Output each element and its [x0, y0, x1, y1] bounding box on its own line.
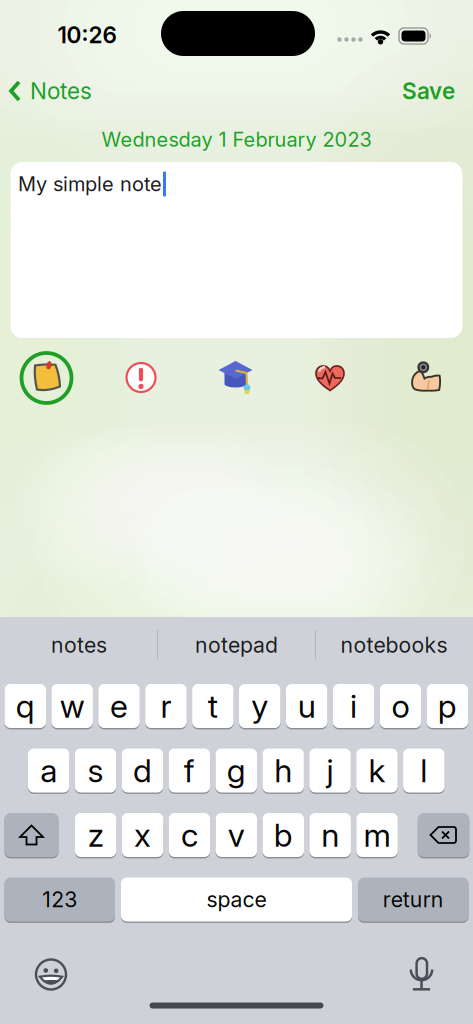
- button[interactable]: Save: [355, 74, 455, 108]
- button[interactable]: w: [51, 683, 93, 729]
- button[interactable]: r: [145, 683, 187, 729]
- button[interactable]: x: [122, 812, 163, 858]
- staticText: Notes: [30, 78, 92, 104]
- button[interactable]: q: [4, 683, 46, 729]
- button[interactable]: space: [121, 876, 352, 922]
- button[interactable]: [406, 953, 436, 993]
- button[interactable]: o: [380, 683, 421, 729]
- staticText: 123: [42, 887, 77, 912]
- button[interactable]: g: [215, 747, 257, 793]
- staticText: s: [87, 752, 103, 789]
- button[interactable]: return: [358, 876, 468, 922]
- staticText: notepad: [195, 632, 278, 658]
- staticText: u: [298, 687, 316, 725]
- staticText: notes: [51, 632, 107, 658]
- staticText: d: [133, 752, 152, 789]
- staticText: b: [274, 816, 293, 854]
- staticText: i: [350, 687, 357, 725]
- button[interactable]: y: [239, 683, 280, 729]
- staticText: 10:26: [57, 22, 116, 48]
- staticText: Wednesday 1 February 2023: [101, 128, 371, 151]
- button[interactable]: notes: [4, 623, 154, 667]
- button[interactable]: My simple note: [10, 162, 462, 338]
- button[interactable]: notepad: [161, 623, 311, 667]
- staticText: q: [16, 687, 35, 725]
- button[interactable]: [418, 812, 469, 858]
- staticText: space: [206, 887, 266, 912]
- button[interactable]: s: [75, 747, 116, 793]
- staticText: r: [160, 687, 171, 725]
- button[interactable]: [123, 359, 159, 395]
- button[interactable]: n: [309, 812, 351, 858]
- staticText: notebooks: [340, 632, 447, 658]
- staticText: v: [228, 816, 245, 854]
- staticText: x: [134, 816, 151, 854]
- button[interactable]: h: [262, 747, 304, 793]
- button[interactable]: j: [309, 747, 351, 793]
- button[interactable]: c: [169, 812, 210, 858]
- staticText: o: [391, 687, 409, 725]
- staticText: g: [227, 752, 246, 789]
- button[interactable]: p: [427, 683, 468, 729]
- staticText: l: [420, 752, 427, 789]
- staticText: n: [321, 816, 339, 854]
- staticText: m: [363, 816, 390, 854]
- button[interactable]: i: [333, 683, 374, 729]
- staticText: Save: [402, 78, 455, 104]
- button[interactable]: k: [356, 747, 398, 793]
- staticText: k: [368, 752, 385, 789]
- button[interactable]: [4, 812, 58, 858]
- button[interactable]: m: [356, 812, 398, 858]
- button[interactable]: Notes: [9, 74, 129, 108]
- button[interactable]: [17, 349, 75, 407]
- button[interactable]: u: [286, 683, 327, 729]
- staticText: My simple note: [18, 172, 162, 196]
- button[interactable]: 123: [4, 876, 115, 922]
- button[interactable]: e: [98, 683, 140, 729]
- staticText: c: [181, 816, 198, 854]
- staticText: z: [88, 816, 104, 854]
- button[interactable]: [403, 352, 447, 398]
- button[interactable]: a: [28, 747, 69, 793]
- button[interactable]: v: [216, 812, 257, 858]
- staticText: p: [438, 687, 457, 725]
- button[interactable]: l: [403, 747, 445, 793]
- staticText: h: [274, 752, 292, 789]
- staticText: f: [184, 752, 195, 789]
- button[interactable]: z: [75, 812, 116, 858]
- staticText: e: [110, 687, 128, 725]
- staticText: return: [383, 887, 444, 912]
- button[interactable]: [312, 360, 348, 396]
- staticText: a: [40, 752, 57, 789]
- staticText: w: [60, 687, 85, 725]
- button[interactable]: f: [169, 747, 210, 793]
- button[interactable]: d: [122, 747, 163, 793]
- button[interactable]: b: [262, 812, 304, 858]
- staticText: y: [251, 687, 268, 725]
- staticText: j: [326, 752, 333, 789]
- button[interactable]: t: [192, 683, 234, 729]
- button[interactable]: notebooks: [319, 623, 469, 667]
- button[interactable]: [215, 357, 255, 397]
- staticText: t: [208, 687, 218, 725]
- button[interactable]: [34, 957, 68, 991]
